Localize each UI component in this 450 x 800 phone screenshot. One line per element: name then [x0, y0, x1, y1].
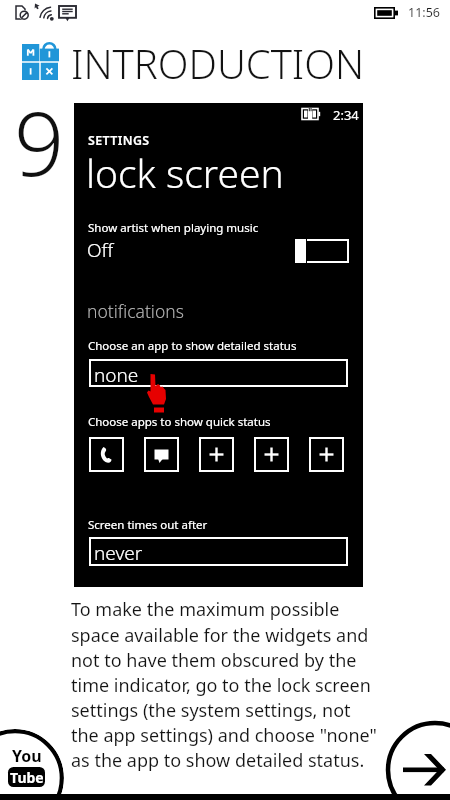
button[interactable]: Phone: [89, 437, 124, 472]
staticText: Choose an app to show detailed status: [88, 338, 297, 354]
button[interactable]: Watch on YouTube: [0, 729, 64, 800]
staticText: 9: [14, 82, 65, 202]
staticText: 2:34: [333, 106, 359, 124]
staticText: You: [12, 745, 42, 767]
staticText: 11:56: [408, 4, 440, 21]
staticText: notifications: [87, 299, 184, 323]
staticText: Choose apps to show quick status: [88, 414, 271, 430]
button[interactable]: none: [89, 359, 348, 387]
button[interactable]: Messaging: [144, 437, 179, 472]
staticText: Show artist when playing music: [88, 220, 259, 236]
staticText: SETTINGS: [88, 132, 150, 149]
staticText: none: [94, 362, 139, 388]
staticText: never: [94, 540, 143, 566]
staticText: lock screen: [86, 146, 284, 199]
staticText: Screen times out after: [88, 517, 208, 533]
button[interactable]: never: [89, 537, 348, 566]
button[interactable]: Add app: [254, 437, 289, 472]
button[interactable]: Next page: [382, 717, 450, 800]
button[interactable]: Add app: [309, 437, 344, 472]
staticText: Off: [87, 237, 114, 263]
staticText: To make the maximum possible space avail…: [71, 597, 378, 772]
staticText: INTRODUCTION: [71, 36, 365, 90]
button[interactable]: Add app: [199, 437, 234, 472]
staticText: Tube: [10, 768, 44, 787]
